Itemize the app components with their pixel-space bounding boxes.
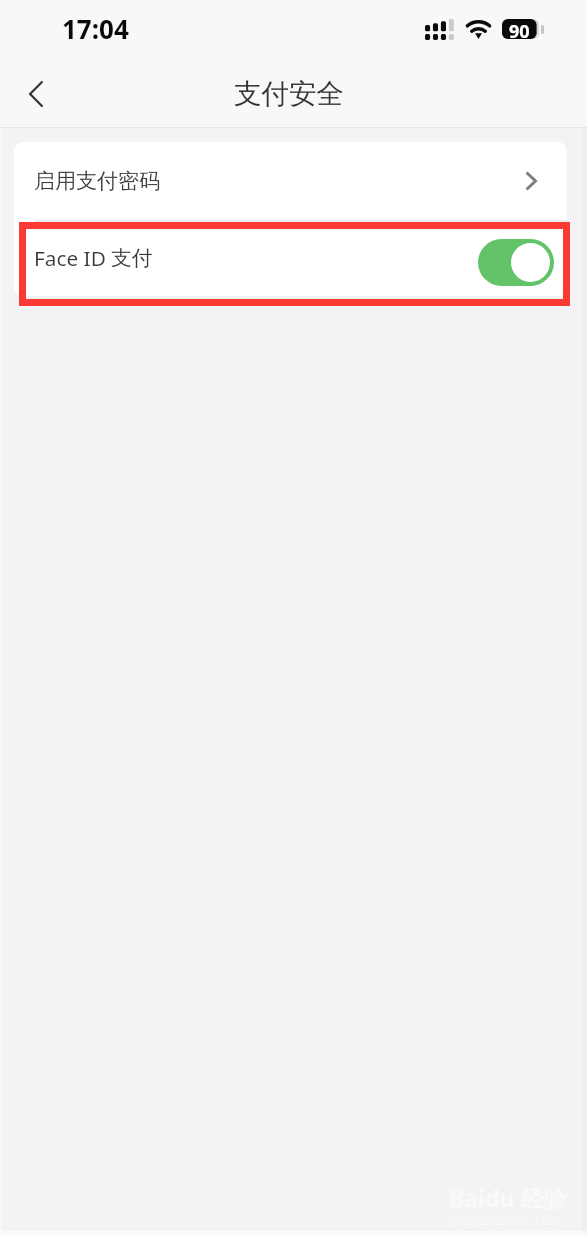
- staticText: Face ID: [34, 244, 106, 272]
- staticText: 支付: [111, 245, 153, 271]
- button[interactable]: Face ID payment switch, on: [478, 239, 554, 286]
- staticText: 17:04: [62, 11, 129, 46]
- button[interactable]: Back: [10, 70, 62, 118]
- button[interactable]: Face ID: [14, 222, 567, 296]
- button[interactable]: 启用支付密码: [14, 142, 567, 220]
- staticText: 启用支付密码: [34, 168, 160, 194]
- staticText: 90: [509, 19, 530, 39]
- staticText: 支付安全: [234, 77, 344, 112]
